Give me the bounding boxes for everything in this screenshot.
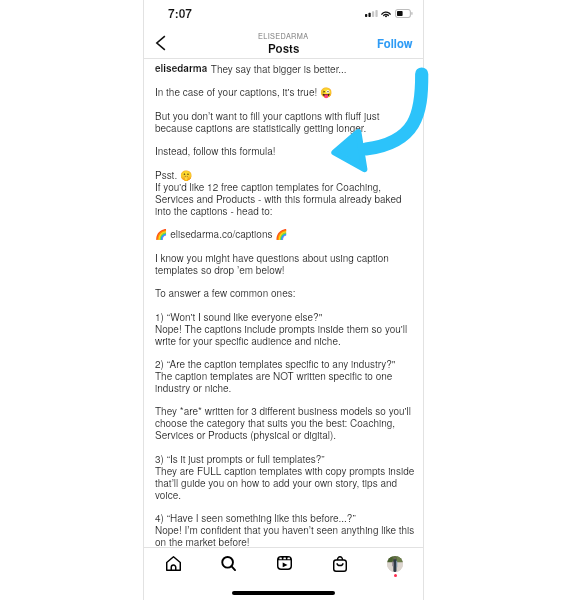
staticText: Follow bbox=[377, 35, 413, 51]
button[interactable]: Shop bbox=[322, 552, 358, 578]
button[interactable]: Search bbox=[210, 552, 247, 578]
staticText: 🌈 elisedarma.co/captions 🌈 bbox=[155, 228, 288, 240]
button[interactable]: Reels bbox=[266, 552, 303, 578]
staticText: 3) “Is it just prompts or full templates… bbox=[155, 453, 415, 501]
staticText: They say that bigger is better... bbox=[208, 63, 347, 75]
button[interactable]: Follow bbox=[377, 34, 421, 52]
staticText: 4) “Have I seen something like this befo… bbox=[155, 512, 415, 548]
button[interactable]: Back bbox=[149, 32, 171, 54]
staticText: I know you might have questions about us… bbox=[155, 252, 389, 276]
button[interactable]: Profile bbox=[376, 552, 414, 578]
staticText: Psst. 🤫 If you'd like 12 free caption te… bbox=[155, 169, 402, 217]
staticText: To answer a few common ones: bbox=[155, 287, 296, 299]
staticText: But you don’t want to fill your captions… bbox=[155, 110, 380, 134]
staticText: elisedarma bbox=[155, 63, 208, 75]
staticText: Instead, follow this formula! bbox=[155, 145, 276, 157]
staticText: 2) “Are the caption templates specific t… bbox=[155, 358, 396, 394]
staticText: 7:07 bbox=[168, 4, 193, 21]
staticText: They *are* written for 3 different busin… bbox=[155, 405, 411, 441]
button[interactable]: Home bbox=[155, 552, 192, 578]
staticText: In the case of your captions, it's true!… bbox=[155, 86, 333, 98]
staticText: 1) “Won't I sound like everyone else?" N… bbox=[155, 311, 408, 347]
staticText: Posts bbox=[268, 40, 300, 57]
staticText: ELISEDARMA bbox=[258, 31, 309, 41]
